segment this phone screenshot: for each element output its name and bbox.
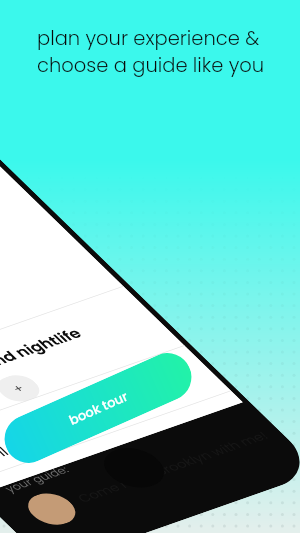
button[interactable]: Home bbox=[92, 442, 176, 494]
button[interactable]: pubs bbox=[0, 386, 5, 430]
staticText: the drinks and nightlife bbox=[0, 324, 87, 400]
staticText: Come meet Brooklyn with me! bbox=[73, 427, 273, 506]
staticText: + bbox=[8, 381, 29, 396]
button[interactable]: + bbox=[0, 371, 47, 406]
staticText: we'll visit 2-3 places bbox=[0, 405, 123, 468]
staticText: plan your experience & bbox=[37, 25, 260, 52]
staticText: choose a guide like you bbox=[37, 52, 265, 79]
button[interactable]: book tour bbox=[0, 345, 199, 471]
staticText: your guide: bbox=[0, 463, 73, 496]
staticText: where: bbox=[0, 425, 2, 450]
staticText: book tour bbox=[66, 387, 131, 429]
